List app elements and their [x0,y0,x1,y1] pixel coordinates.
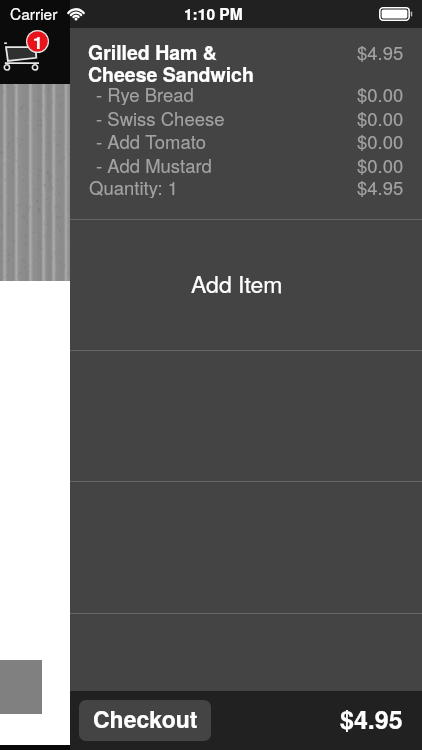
staticText: Checkout [93,702,198,735]
button[interactable]: Shopping cart, 1 item [0,28,70,84]
staticText: $0.00 [357,152,404,176]
staticText: $0.00 [357,105,404,129]
staticText: - Rye Bread [96,81,365,105]
staticText: Add Item [191,267,283,300]
button[interactable]: Checkout [79,700,211,741]
staticText: $4.95 [357,174,404,198]
staticText: $0.00 [357,128,404,152]
staticText: 1:10 PM [184,3,243,25]
staticText: - Add Tomato [96,128,365,152]
staticText: - Swiss Cheese [96,105,365,129]
staticText: Carrier [10,2,58,24]
staticText: - Add Mustard [96,152,365,176]
staticText: $4.95 [340,701,403,737]
staticText: $0.00 [357,81,404,105]
staticText: 1 [33,30,43,53]
staticText: Grilled Ham & Cheese Sandwich [88,38,357,88]
staticText: Quantity: 1 [89,174,358,198]
staticText: $4.95 [357,39,404,65]
button[interactable]: Grilled Ham & Cheese Sandwich [70,28,422,219]
button[interactable]: Add Item [70,220,422,350]
